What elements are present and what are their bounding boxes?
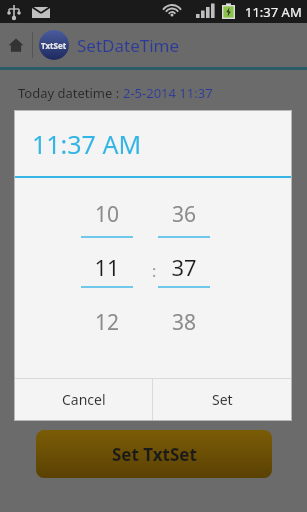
staticText: 11 (71, 252, 143, 282)
staticText: Set TxtSet (112, 443, 197, 466)
button[interactable]: Cancel (15, 379, 152, 420)
button[interactable]: Home (0, 23, 32, 67)
staticText: 2-5-2014 11:37 (123, 84, 213, 102)
staticText: 38 (148, 308, 220, 337)
button[interactable]: 10 (71, 178, 143, 368)
staticText: 11:37 AM (245, 3, 302, 21)
staticText: 37 (148, 252, 220, 282)
staticText: SetDateTime (77, 34, 180, 57)
staticText: : (152, 260, 157, 282)
staticText: 12 (71, 308, 143, 337)
staticText: 36 (148, 200, 220, 229)
staticText: 10 (71, 200, 143, 229)
staticText: Today datetime : (18, 84, 123, 102)
staticText: Cancel (62, 390, 106, 409)
staticText: TxtSet (41, 40, 67, 51)
staticText: Set (212, 390, 233, 409)
button[interactable]: Set (153, 379, 291, 420)
button[interactable]: 36 (148, 178, 220, 368)
button[interactable]: Set TxtSet (36, 430, 272, 478)
staticText: 11:37 AM (32, 127, 142, 161)
